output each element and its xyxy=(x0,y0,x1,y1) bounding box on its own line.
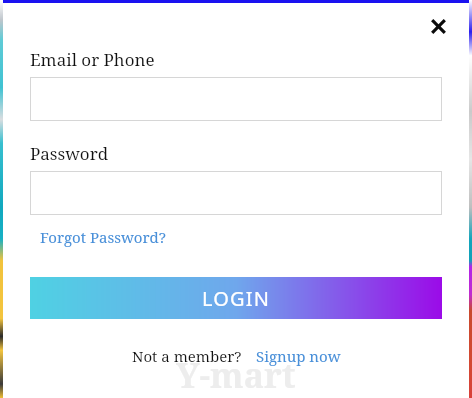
button[interactable]: LOGIN xyxy=(30,277,442,319)
staticText: Not a member? xyxy=(132,346,242,366)
staticText: Password xyxy=(30,142,109,165)
button[interactable]: Forgot Password? xyxy=(40,227,166,247)
staticText: LOGIN xyxy=(202,285,271,312)
staticText: Signup now xyxy=(256,346,341,366)
staticText: Email or Phone xyxy=(30,48,155,71)
button[interactable]: Close xyxy=(423,11,453,41)
staticText: Forgot Password? xyxy=(40,227,166,247)
staticText: Y-mart xyxy=(176,352,296,398)
button[interactable]: Signup now xyxy=(256,346,341,366)
button[interactable] xyxy=(30,171,442,215)
button[interactable] xyxy=(30,77,442,121)
